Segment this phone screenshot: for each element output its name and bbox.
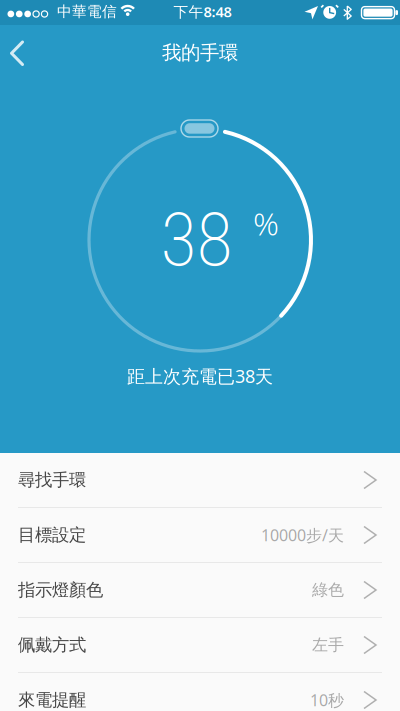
- button[interactable]: 佩戴方式: [0, 618, 400, 672]
- staticText: 尋找手環: [18, 469, 86, 491]
- button[interactable]: 指示燈顏色: [0, 563, 400, 617]
- staticText: 10秒: [310, 689, 344, 711]
- button[interactable]: Back: [0, 31, 39, 75]
- button[interactable]: 尋找手環: [0, 453, 400, 507]
- button[interactable]: 目標設定: [0, 508, 400, 562]
- staticText: 中華電信: [57, 2, 117, 21]
- staticText: 綠色: [312, 580, 344, 600]
- staticText: 指示燈顏色: [18, 579, 103, 601]
- staticText: 左手: [312, 635, 344, 655]
- staticText: 距上次充電已38天: [127, 364, 273, 388]
- staticText: 38: [160, 196, 232, 284]
- staticText: 目標設定: [18, 524, 86, 546]
- button[interactable]: 來電提醒: [0, 673, 400, 711]
- staticText: 來電提醒: [18, 689, 86, 711]
- staticText: %: [253, 201, 279, 245]
- staticText: 下午8:48: [173, 1, 231, 21]
- staticText: 我的手環: [162, 40, 238, 65]
- staticText: 10000步/天: [261, 524, 344, 546]
- staticText: 佩戴方式: [18, 634, 86, 656]
